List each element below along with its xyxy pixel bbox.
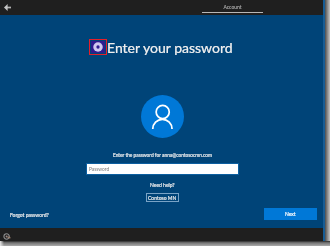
button[interactable]: Back [1,1,14,14]
button[interactable]: Ease of access [1,230,13,242]
staticText: Enter the password for anna@contosocmn.c… [86,152,239,158]
staticText: Next [285,211,296,217]
button[interactable]: Need help? [140,181,185,189]
staticText: Contoso MN [148,195,177,201]
button[interactable]: Password [87,164,238,174]
staticText: Account [202,4,263,10]
button[interactable]: Contoso MN [146,193,179,202]
staticText: Password [89,166,110,172]
button[interactable]: Account [202,0,263,14]
staticText: Need help? [150,182,175,188]
staticText: Forgot password? [10,212,49,218]
staticText: Enter your password [107,39,233,56]
button[interactable]: Forgot password? [10,210,49,220]
button[interactable]: Next [264,208,317,220]
